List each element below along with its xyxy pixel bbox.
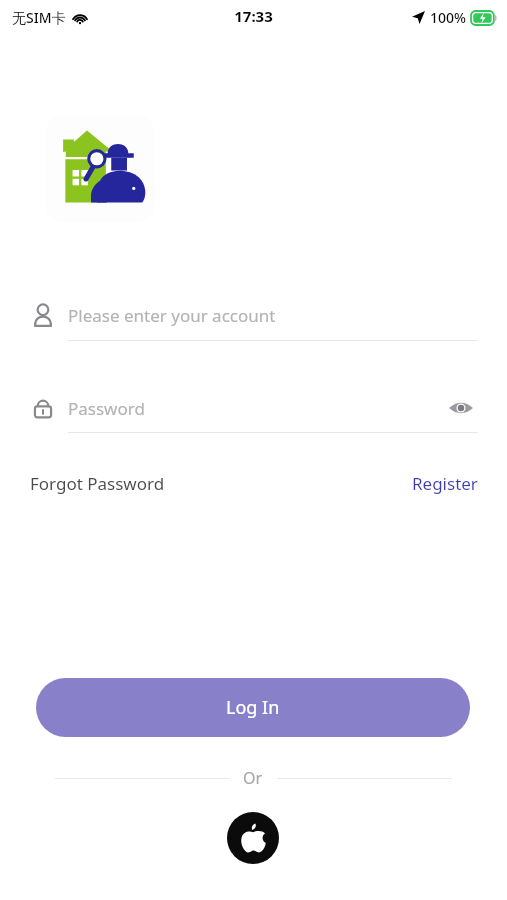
staticText: 100%: [430, 8, 466, 27]
staticText: Register: [412, 472, 478, 495]
button[interactable]: Please enter your account: [30, 290, 478, 340]
button[interactable]: Register: [412, 472, 478, 495]
button[interactable]: Sign in with Apple: [227, 812, 279, 864]
staticText: 无SIM卡: [12, 8, 66, 27]
button[interactable]: Log In: [36, 678, 470, 737]
staticText: Password: [68, 397, 145, 420]
button[interactable]: Password: [68, 397, 444, 420]
staticText: Log In: [226, 695, 280, 720]
button[interactable]: Forgot Password: [30, 472, 165, 495]
staticText: 17:33: [234, 6, 273, 26]
staticText: Please enter your account: [68, 304, 276, 327]
staticText: Or: [243, 767, 263, 789]
staticText: Forgot Password: [30, 472, 165, 495]
button[interactable]: Show password: [444, 391, 478, 425]
